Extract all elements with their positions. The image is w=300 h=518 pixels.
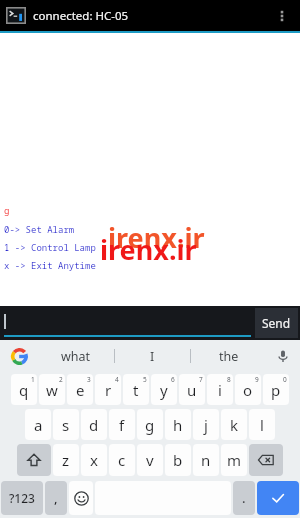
button[interactable]: d — [81, 409, 107, 440]
staticText: 2 — [59, 375, 63, 384]
button[interactable]: Send — [255, 308, 298, 338]
button[interactable]: v — [137, 444, 163, 476]
button[interactable]: r — [95, 374, 121, 405]
button[interactable]: I — [115, 340, 190, 372]
staticText: what — [61, 348, 91, 365]
staticText: u — [187, 380, 197, 400]
staticText: 0-> Set Alarm — [4, 223, 75, 235]
button[interactable]: Google — [0, 340, 38, 372]
button[interactable]: m — [221, 444, 247, 476]
staticText: the — [219, 348, 239, 365]
button[interactable]: Shift — [17, 444, 51, 476]
staticText: s — [62, 415, 70, 435]
staticText: w — [46, 380, 58, 400]
staticText: l — [260, 415, 264, 435]
button[interactable]: z — [53, 444, 79, 476]
staticText: connected: HC-05 — [33, 8, 129, 24]
staticText: x — [90, 450, 98, 470]
button[interactable]: the — [191, 340, 266, 372]
button[interactable]: More options — [270, 4, 294, 28]
staticText: o — [243, 380, 253, 400]
button[interactable]: u — [179, 374, 205, 405]
button[interactable]: b — [165, 444, 191, 476]
staticText: v — [146, 450, 154, 470]
staticText: i — [218, 380, 222, 400]
button[interactable]: e — [67, 374, 93, 405]
staticText: d — [89, 415, 99, 435]
staticText: g — [145, 415, 155, 435]
staticText: h — [173, 415, 183, 435]
button[interactable] — [4, 306, 251, 340]
button[interactable]: k — [221, 409, 247, 440]
button[interactable]: h — [165, 409, 191, 440]
staticText: 8 — [227, 375, 231, 384]
staticText: r — [105, 380, 112, 400]
staticText: . — [242, 489, 246, 507]
staticText: Send — [262, 315, 291, 331]
staticText: ?123 — [9, 490, 35, 506]
staticText: q — [19, 380, 29, 400]
button[interactable]: y — [151, 374, 177, 405]
staticText: irenx.ir — [108, 219, 205, 256]
button[interactable]: o — [235, 374, 261, 405]
staticText: c — [118, 450, 126, 470]
button[interactable]: p — [263, 374, 289, 405]
staticText: irenx.ir — [100, 231, 197, 268]
button[interactable]: q — [11, 374, 37, 405]
staticText: e — [76, 380, 85, 400]
staticText: 4 — [115, 375, 119, 384]
staticText: k — [230, 415, 239, 435]
button[interactable]: Emoji — [69, 481, 93, 515]
staticText: 0 — [283, 375, 287, 384]
button[interactable]: n — [193, 444, 219, 476]
button[interactable]: Voice input — [266, 340, 300, 372]
staticText: t — [133, 380, 139, 400]
button[interactable]: t — [123, 374, 149, 405]
staticText: f — [119, 415, 125, 435]
button[interactable]: a — [25, 409, 51, 440]
button[interactable]: i — [207, 374, 233, 405]
staticText: m — [227, 450, 242, 470]
staticText: I — [150, 348, 155, 365]
staticText: 1 — [31, 375, 35, 384]
staticText: 5 — [143, 375, 147, 384]
staticText: 6 — [171, 375, 175, 384]
staticText: , — [54, 489, 58, 507]
button[interactable]: what — [38, 340, 114, 372]
button[interactable]: Enter — [257, 481, 299, 515]
button[interactable]: c — [109, 444, 135, 476]
staticText: g — [4, 204, 10, 216]
staticText: y — [160, 380, 168, 400]
staticText: 9 — [255, 375, 259, 384]
staticText: 3 — [87, 375, 91, 384]
staticText: 7 — [199, 375, 203, 384]
button[interactable]: w — [39, 374, 65, 405]
button[interactable]: ?123 — [1, 481, 43, 515]
button[interactable]: , — [45, 481, 67, 515]
button[interactable]: x — [81, 444, 107, 476]
button[interactable]: . — [233, 481, 255, 515]
staticText: a — [34, 415, 43, 435]
staticText: p — [271, 380, 281, 400]
button[interactable]: l — [249, 409, 275, 440]
staticText: 1 -> Control Lamp — [4, 241, 96, 253]
staticText: b — [173, 450, 183, 470]
button[interactable]: g — [137, 409, 163, 440]
button[interactable]: s — [53, 409, 79, 440]
button[interactable]: Backspace — [249, 444, 283, 476]
button[interactable]: j — [193, 409, 219, 440]
staticText: z — [62, 450, 70, 470]
staticText: n — [201, 450, 211, 470]
staticText: x -> Exit Anytime — [4, 259, 96, 271]
staticText: j — [204, 415, 208, 435]
button[interactable]: f — [109, 409, 135, 440]
